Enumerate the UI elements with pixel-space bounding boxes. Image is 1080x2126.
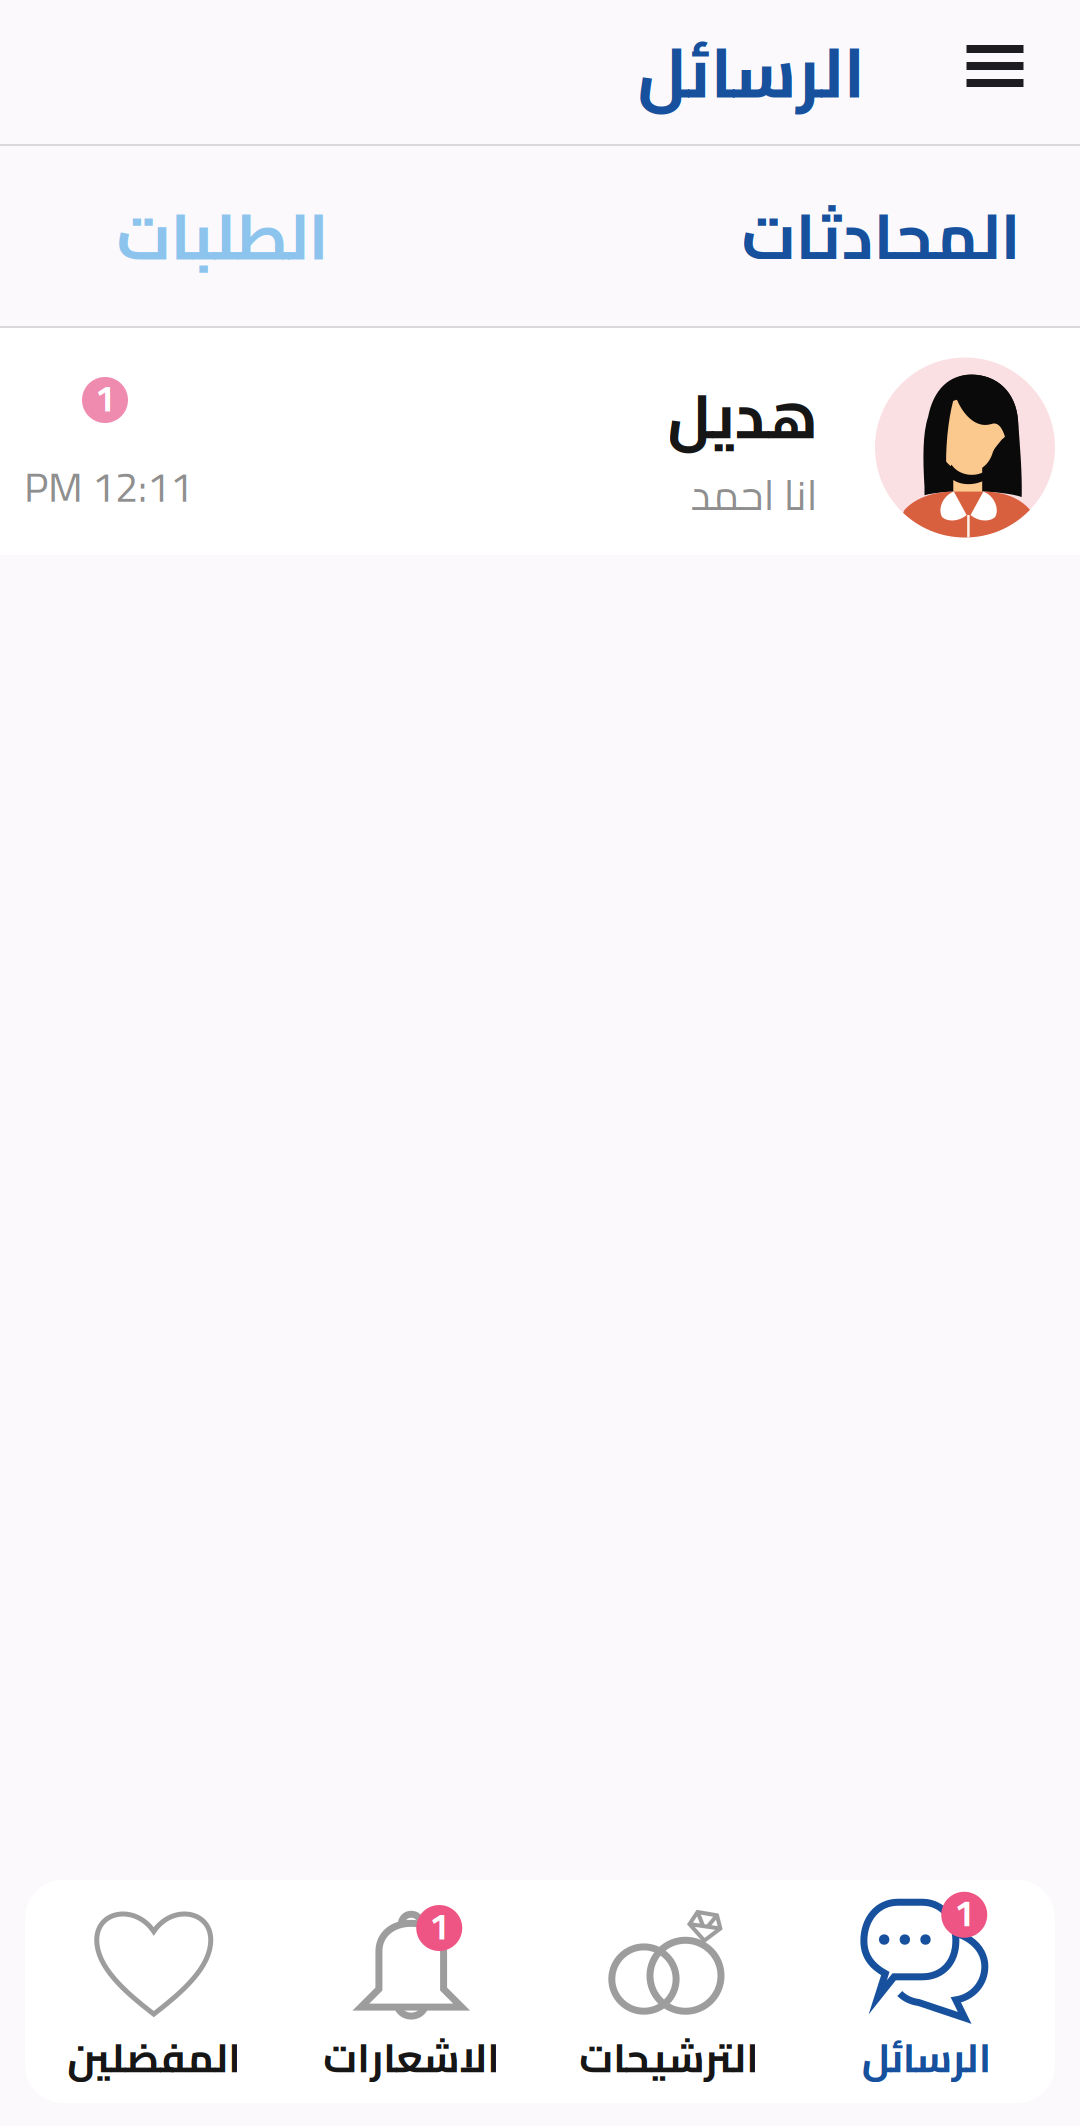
staticText: الترشيحات (579, 2020, 759, 2095)
staticText: 1 (95, 365, 115, 432)
staticText: الطلبات (116, 176, 328, 296)
staticText: الرسائل (861, 2020, 991, 2095)
staticText: 1 (429, 1893, 449, 1960)
button[interactable]: 1 (0, 328, 1080, 555)
staticText: 1 (954, 1879, 974, 1947)
staticText: هديل (667, 358, 817, 473)
button[interactable]: 1 (282, 1908, 540, 2095)
button[interactable]: الطلبات (0, 146, 540, 326)
button[interactable]: الترشيحات (540, 1908, 797, 2095)
staticText: الاشعارات (323, 2020, 500, 2095)
staticText: المحادثات (741, 176, 1020, 296)
button[interactable]: المحادثات (540, 146, 1080, 326)
staticText: PM 12:11 (24, 448, 193, 525)
staticText: انا احمد (690, 456, 817, 534)
button[interactable]: 1 (797, 1908, 1055, 2095)
staticText: المفضلين (67, 2020, 241, 2095)
staticText: الرسائل (637, 7, 865, 137)
button[interactable]: Menu (949, 26, 1041, 118)
button[interactable]: المفضلين (25, 1908, 282, 2095)
